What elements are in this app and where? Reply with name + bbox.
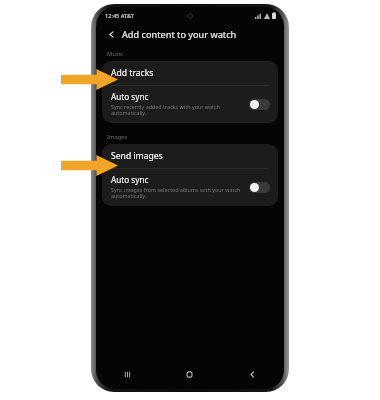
staticText: Sync recently added tracks with your wat… [111, 103, 244, 117]
staticText: Send images [111, 150, 163, 162]
staticText: Auto sync [111, 174, 149, 185]
staticText: Sync images from selected albums with yo… [111, 186, 244, 200]
staticText: Images [107, 133, 128, 141]
button[interactable]: Home [158, 363, 221, 385]
staticText: 12:45 AT&T [105, 12, 135, 20]
staticText: Add content to your watch [122, 28, 237, 41]
button[interactable]: Auto sync toggle, off [249, 182, 270, 193]
button[interactable]: Navigate up [104, 27, 118, 41]
button[interactable]: Add tracks [102, 61, 278, 85]
button[interactable]: Recent apps [96, 363, 158, 385]
button[interactable]: Auto sync [102, 86, 278, 123]
other: Highlight Send images [61, 155, 118, 176]
button[interactable]: Auto sync [102, 169, 278, 206]
button[interactable]: Auto sync toggle, off [249, 99, 270, 110]
staticText: Music [107, 50, 123, 58]
staticText: Auto sync [111, 91, 149, 102]
button[interactable]: Back [221, 363, 284, 385]
staticText: Add tracks [111, 67, 154, 79]
other: Highlight Add tracks [61, 69, 118, 90]
button[interactable]: Send images [102, 144, 278, 168]
